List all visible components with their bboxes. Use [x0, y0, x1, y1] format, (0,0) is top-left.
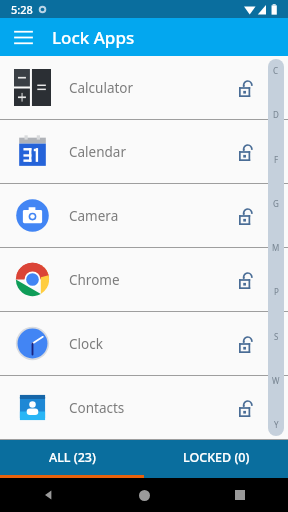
- staticText: M: [272, 242, 280, 253]
- staticText: P: [274, 286, 279, 297]
- staticText: Y: [274, 419, 279, 430]
- staticText: 5:28: [11, 2, 33, 17]
- button[interactable]: Calculator: [0, 56, 288, 119]
- button[interactable]: Chrome: [0, 248, 288, 311]
- button[interactable]: Lock Camera: [230, 199, 264, 233]
- staticText: Calculator: [69, 79, 230, 97]
- staticText: LOCKED (0): [183, 449, 250, 466]
- staticText: ALL (23): [49, 449, 96, 466]
- staticText: D: [273, 109, 279, 120]
- staticText: G: [273, 198, 279, 209]
- button[interactable]: Lock Calendar: [230, 135, 264, 169]
- button[interactable]: LOCKED (0): [144, 440, 288, 475]
- staticText: S: [274, 331, 279, 342]
- button[interactable]: Home: [96, 478, 192, 512]
- button[interactable]: Recent apps: [192, 478, 288, 512]
- button[interactable]: Lock Calculator: [230, 71, 264, 105]
- staticText: Lock Apps: [52, 26, 135, 49]
- button[interactable]: Lock Chrome: [230, 263, 264, 297]
- staticText: W: [272, 375, 280, 386]
- button[interactable]: Lock Clock: [230, 327, 264, 361]
- staticText: Clock: [69, 335, 230, 353]
- staticText: F: [274, 154, 279, 165]
- button[interactable]: ALL (23): [0, 440, 144, 475]
- button[interactable]: Alphabet fast scroll: [268, 59, 284, 440]
- button[interactable]: Clock: [0, 312, 288, 375]
- staticText: Camera: [69, 207, 230, 225]
- button[interactable]: Calendar: [0, 120, 288, 183]
- staticText: Calendar: [69, 143, 230, 161]
- button[interactable]: Camera: [0, 184, 288, 247]
- button[interactable]: Back: [0, 478, 96, 512]
- button[interactable]: Contacts: [0, 376, 288, 439]
- button[interactable]: Lock Contacts: [230, 391, 264, 425]
- staticText: Contacts: [69, 399, 230, 417]
- button[interactable]: Open navigation menu: [8, 22, 38, 52]
- staticText: C: [273, 65, 279, 76]
- staticText: Chrome: [69, 271, 230, 289]
